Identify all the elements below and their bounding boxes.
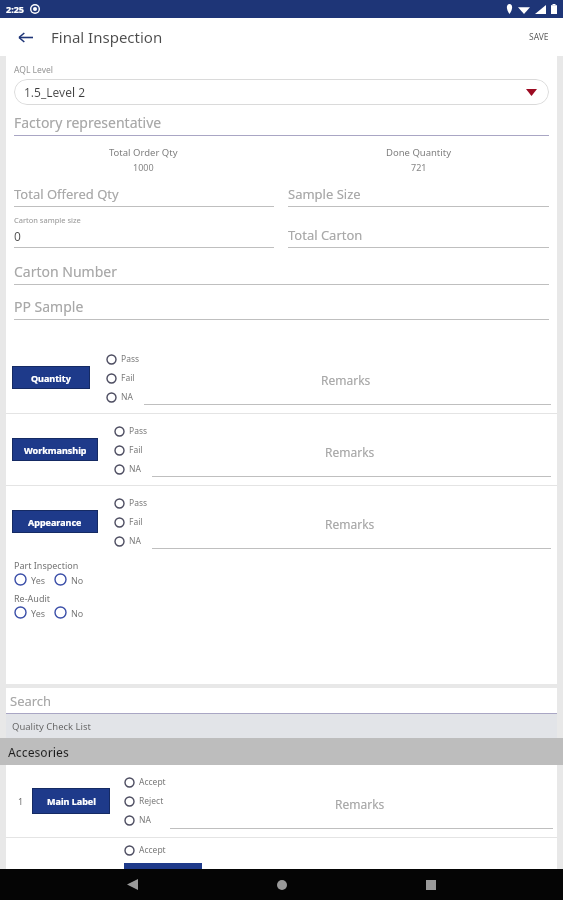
staticText: Carton Number [14, 262, 117, 281]
button[interactable]: NA [114, 535, 141, 547]
staticText: Remarks [325, 444, 375, 460]
staticText: Remarks [335, 796, 385, 812]
staticText: Total Order Qty [109, 146, 178, 159]
button[interactable]: Total Offered Qty [14, 185, 274, 207]
staticText: Pass [129, 425, 148, 437]
staticText: Total Offered Qty [14, 185, 119, 203]
staticText: Yes [31, 607, 46, 619]
button[interactable]: PP Sample [14, 297, 549, 320]
button[interactable]: Back [12, 24, 38, 50]
button[interactable]: Total Carton [288, 226, 549, 248]
staticText: Workmanship [24, 444, 87, 456]
staticText: SAVE [529, 31, 549, 43]
staticText: Part Inspection [14, 559, 79, 571]
staticText: Search [10, 692, 52, 710]
staticText: Accept [139, 844, 166, 856]
staticText: 0 [14, 228, 21, 244]
button[interactable]: Home [264, 869, 300, 900]
button[interactable]: Reject [124, 795, 164, 807]
staticText: NA [139, 814, 151, 826]
button[interactable]: Pass [114, 497, 148, 509]
button[interactable]: 0 [14, 228, 274, 248]
button[interactable]: Fail [114, 444, 143, 456]
button[interactable]: Accept [124, 776, 166, 788]
button[interactable]: NA [106, 391, 133, 403]
staticText: Remarks [325, 516, 375, 532]
button[interactable]: Sample Size [288, 185, 549, 207]
staticText: Main Label [47, 795, 96, 807]
staticText: Final Inspection [51, 27, 163, 47]
staticText: Accesories [8, 744, 69, 760]
button[interactable]: Appearance [12, 510, 98, 533]
staticText: No [71, 574, 84, 586]
button[interactable]: Main Label [32, 788, 110, 814]
staticText: Fail [129, 516, 143, 528]
button[interactable]: Accept [124, 844, 166, 856]
staticText: Carton sample size [14, 215, 81, 225]
button[interactable]: Carton Number [14, 262, 549, 285]
button[interactable]: NA [114, 463, 141, 475]
button[interactable]: Workmanship [12, 438, 98, 461]
staticText: NA [129, 535, 141, 547]
button[interactable]: 1.5_Level 2 [14, 79, 549, 105]
staticText: 2:25 [6, 3, 24, 15]
button[interactable]: Factory representative [14, 113, 549, 136]
button[interactable]: Fail [114, 516, 143, 528]
button[interactable]: Pass [114, 425, 148, 437]
staticText: Appearance [28, 516, 82, 528]
staticText: Accept [139, 776, 166, 788]
staticText: Quantity [31, 372, 71, 384]
staticText: No [71, 607, 84, 619]
staticText: Fail [121, 372, 135, 384]
button[interactable]: No [54, 606, 84, 619]
staticText: 721 [411, 161, 427, 173]
staticText: Pass [121, 353, 140, 365]
staticText: Reject [139, 795, 164, 807]
button[interactable]: No [54, 573, 84, 586]
staticText: 1.5_Level 2 [24, 84, 86, 100]
staticText: Total Carton [288, 226, 363, 244]
button[interactable]: Search [6, 688, 557, 714]
button[interactable]: Recent apps [413, 869, 449, 900]
staticText: Pass [129, 497, 148, 509]
button[interactable]: Pass [106, 353, 140, 365]
staticText: Sample Size [288, 185, 361, 203]
staticText: NA [129, 463, 141, 475]
button[interactable]: Back [114, 869, 150, 900]
staticText: 1000 [133, 161, 154, 173]
button[interactable]: Quantity [12, 366, 90, 389]
button[interactable]: SAVE [515, 23, 563, 51]
button[interactable]: Yes [14, 606, 46, 619]
staticText: Factory representative [14, 113, 162, 132]
staticText: Re-Audit [14, 592, 50, 604]
button[interactable]: Fail [106, 372, 135, 384]
staticText: Remarks [321, 372, 371, 388]
staticText: AQL Level [14, 64, 53, 76]
button[interactable]: NA [124, 814, 151, 826]
staticText: Fail [129, 444, 143, 456]
button[interactable]: Yes [14, 573, 46, 586]
staticText: Done Quantity [386, 146, 452, 159]
staticText: PP Sample [14, 297, 84, 316]
staticText: Yes [31, 574, 46, 586]
staticText: NA [121, 391, 133, 403]
staticText: Quality Check List [12, 720, 92, 733]
staticText: 1 [18, 795, 24, 807]
